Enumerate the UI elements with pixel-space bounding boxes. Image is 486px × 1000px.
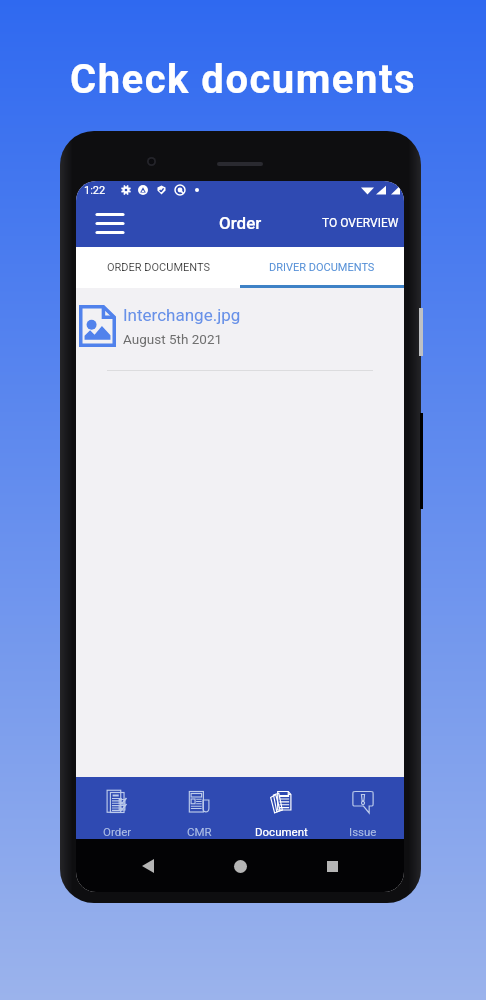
staticText: Order bbox=[103, 825, 132, 838]
button[interactable]: Home bbox=[220, 846, 260, 886]
button[interactable]: Interchange.jpg bbox=[76, 288, 404, 370]
button[interactable]: Menu bbox=[87, 200, 133, 246]
button[interactable]: Issue bbox=[322, 777, 404, 839]
button[interactable]: Back bbox=[128, 846, 168, 886]
staticText: TO OVERVIEW bbox=[322, 216, 399, 230]
staticText: Document bbox=[255, 825, 308, 838]
staticText: Issue bbox=[349, 825, 377, 838]
staticText: Check documents bbox=[0, 56, 486, 103]
button[interactable]: Document bbox=[240, 777, 322, 839]
staticText: DRIVER DOCUMENTS bbox=[269, 261, 375, 274]
button[interactable]: ORDER DOCUMENTS bbox=[76, 247, 240, 288]
staticText: Order bbox=[219, 213, 262, 233]
button[interactable]: CMR bbox=[158, 777, 240, 839]
button[interactable]: DRIVER DOCUMENTS bbox=[240, 247, 404, 288]
button[interactable]: Order bbox=[76, 777, 158, 839]
staticText: ORDER DOCUMENTS bbox=[107, 261, 210, 274]
staticText: 1:22 bbox=[84, 184, 106, 197]
button[interactable]: Recents bbox=[312, 846, 352, 886]
staticText: Interchange.jpg bbox=[123, 305, 241, 325]
button[interactable]: TO OVERVIEW bbox=[317, 202, 404, 244]
staticText: CMR bbox=[187, 825, 212, 838]
staticText: August 5th 2021 bbox=[123, 331, 223, 347]
